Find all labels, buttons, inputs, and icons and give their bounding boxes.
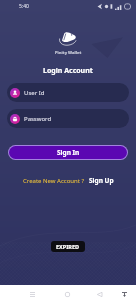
- staticText: Sign Up: [89, 176, 114, 185]
- staticText: User Id: [24, 89, 45, 97]
- button[interactable]: Hide keyboard: [116, 286, 132, 302]
- staticText: Pinity Wallet: [55, 50, 82, 56]
- staticText: Login Account: [43, 66, 93, 76]
- button[interactable]: Sign In: [9, 146, 127, 159]
- staticText: Sign In: [57, 148, 80, 157]
- button[interactable]: Sign Up: [89, 176, 114, 185]
- button[interactable]: Recent apps: [24, 286, 40, 302]
- staticText: 5:40: [19, 3, 29, 10]
- staticText: Create New Account ?: [23, 177, 85, 185]
- button[interactable]: Password: [7, 109, 129, 128]
- staticText: Password: [24, 115, 52, 123]
- button[interactable]: Home: [59, 286, 75, 302]
- staticText: EXPIRED: [56, 243, 80, 250]
- button[interactable]: Back: [91, 286, 107, 302]
- button[interactable]: User Id: [7, 83, 129, 102]
